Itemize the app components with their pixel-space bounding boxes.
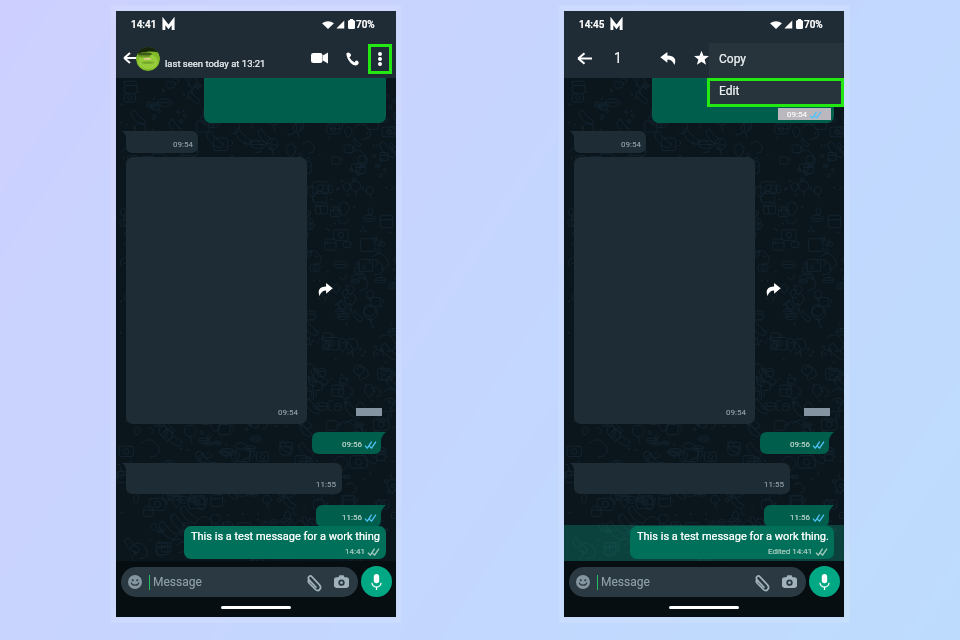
staticText: 11:56 [790, 513, 810, 522]
button[interactable] [204, 71, 386, 123]
staticText: 09:54 [278, 408, 298, 417]
button[interactable]: 09:56 [760, 432, 834, 454]
button[interactable]: Video call [307, 46, 332, 70]
button[interactable]: Record voice message [361, 566, 392, 597]
button[interactable]: 11:55 [122, 463, 342, 494]
staticText: 09:54 [787, 110, 807, 119]
staticText: 09:56 [790, 440, 810, 449]
staticText: Edit [719, 84, 740, 98]
staticText: This is a test message for a work thing. [637, 530, 829, 543]
staticText: 1 [614, 50, 622, 66]
button[interactable]: Copy [709, 43, 844, 76]
staticText: 70% [356, 19, 375, 31]
button[interactable]: Message [569, 567, 806, 597]
button[interactable]: More options [368, 44, 392, 74]
button[interactable]: This is a test message for a work thing [184, 526, 386, 559]
staticText: Copy [719, 52, 747, 66]
staticText: Edited 14:41 [768, 547, 813, 556]
button[interactable]: Forward [762, 278, 784, 300]
button[interactable]: Forward [314, 278, 336, 300]
staticText: Message [601, 575, 650, 589]
staticText: 09:54 [621, 140, 641, 149]
staticText: 09:54 [173, 140, 193, 149]
button[interactable]: Record voice message [809, 566, 840, 597]
staticText: Message [153, 575, 202, 589]
button[interactable] [652, 71, 834, 123]
button[interactable]: 11:56 [316, 505, 386, 527]
button[interactable]: Back [572, 47, 596, 69]
staticText: 14:45 [579, 19, 605, 31]
button[interactable]: 09:56 [312, 432, 386, 454]
staticText: 70% [804, 19, 823, 31]
button[interactable]: Reply [656, 46, 680, 70]
staticText: 14:41 [345, 547, 365, 556]
button[interactable]: Message [121, 567, 358, 597]
button[interactable]: last seen today at 13:21 [165, 58, 266, 69]
staticText: 09:56 [342, 440, 362, 449]
button[interactable]: This is a test message for a work thing. [630, 526, 834, 559]
button[interactable]: Edit [709, 76, 844, 105]
staticText: 11:56 [342, 513, 362, 522]
staticText: This is a test message for a work thing [191, 530, 380, 543]
button[interactable]: 11:55 [570, 463, 790, 494]
button[interactable]: 09:54 [570, 131, 646, 153]
staticText: 11:55 [764, 480, 784, 489]
button[interactable]: Voice call [340, 46, 365, 70]
staticText: 14:41 [131, 19, 157, 31]
button[interactable]: 11:56 [764, 505, 834, 527]
button[interactable]: Back [116, 46, 143, 70]
button[interactable]: 09:54 [122, 131, 198, 153]
staticText: 09:54 [726, 408, 746, 417]
button[interactable]: Star [689, 46, 713, 70]
button[interactable]: Profile photo [136, 47, 160, 71]
staticText: 11:55 [316, 480, 336, 489]
